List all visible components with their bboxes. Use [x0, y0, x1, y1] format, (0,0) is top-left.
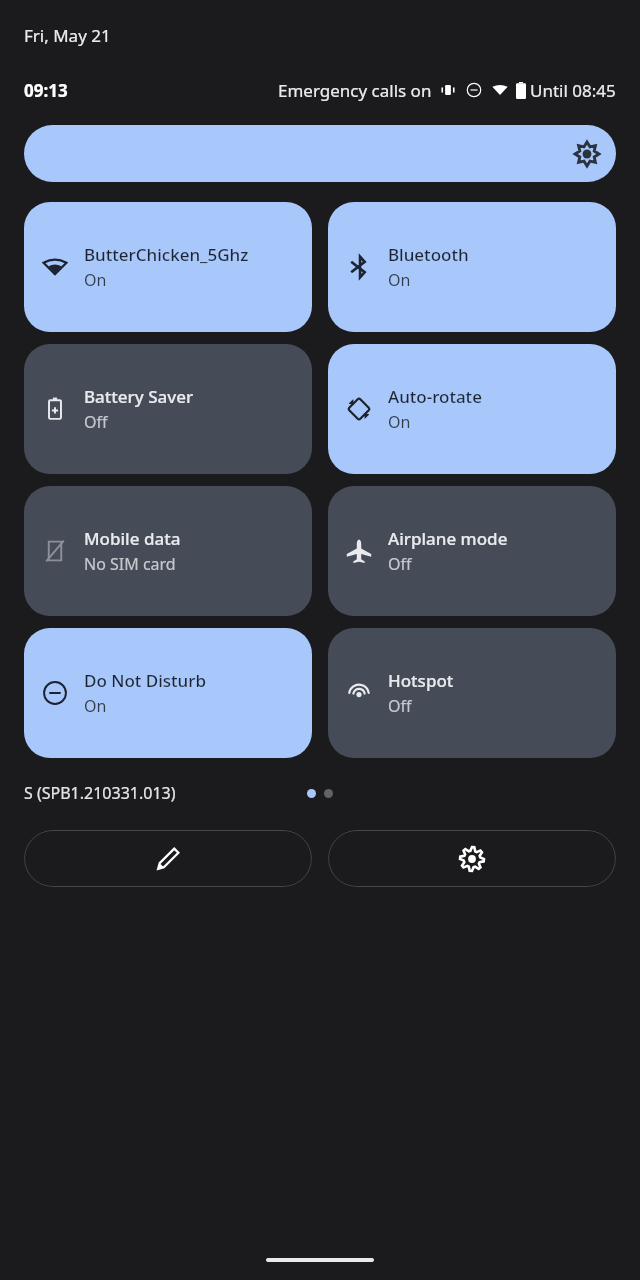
staticText: On [84, 269, 107, 291]
button[interactable]: Bluetooth [328, 202, 616, 332]
staticText: Do Not Disturb [84, 669, 206, 692]
staticText: 09:13 [24, 79, 68, 102]
button[interactable]: ButterChicken_5Ghz [24, 202, 312, 332]
button[interactable]: Settings [328, 830, 616, 887]
staticText: On [388, 411, 411, 433]
button[interactable]: Battery Saver [24, 344, 312, 474]
staticText: Until 08:45 [530, 79, 616, 102]
staticText: Emergency calls on [278, 79, 432, 102]
button[interactable]: Airplane mode [328, 486, 616, 616]
staticText: Hotspot [388, 669, 454, 692]
button[interactable]: Auto-rotate [328, 344, 616, 474]
staticText: Off [388, 553, 412, 575]
button[interactable]: Edit [24, 830, 312, 887]
button[interactable]: Hotspot [328, 628, 616, 758]
staticText: ButterChicken_5Ghz [84, 243, 249, 266]
staticText: Mobile data [84, 527, 181, 550]
staticText: Off [84, 411, 108, 433]
staticText: Bluetooth [388, 243, 469, 266]
staticText: Fri, May 21 [24, 24, 111, 47]
staticText: Airplane mode [388, 527, 508, 550]
button[interactable]: Do Not Disturb [24, 628, 312, 758]
staticText: S (SPB1.210331.013) [24, 782, 176, 804]
staticText: Auto-rotate [388, 385, 482, 408]
staticText: On [84, 695, 107, 717]
button[interactable]: Brightness [24, 125, 616, 182]
staticText: Battery Saver [84, 385, 194, 408]
staticText: On [388, 269, 411, 291]
staticText: No SIM card [84, 553, 176, 575]
staticText: Off [388, 695, 412, 717]
button[interactable]: Mobile data [24, 486, 312, 616]
